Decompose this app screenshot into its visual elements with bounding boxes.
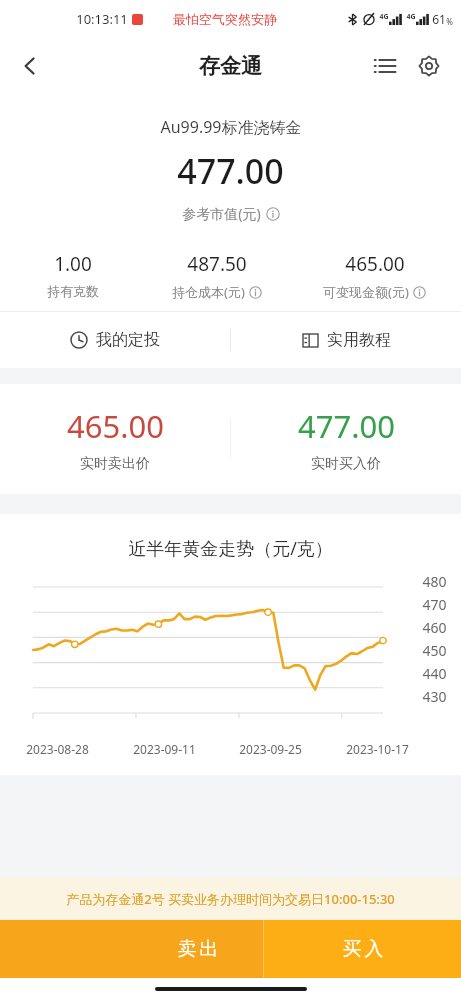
staticText: 参考市值(元) (182, 204, 261, 223)
staticText: 460 (422, 618, 447, 637)
staticText: 477.00 (298, 405, 395, 447)
staticText: Au99.99标准浇铸金 (160, 116, 302, 138)
staticText: 持仓成本(元) (172, 283, 245, 301)
button[interactable]: 465.00 (292, 251, 457, 301)
staticText: 450 (422, 641, 447, 660)
staticText: 存金通 (199, 53, 262, 79)
button[interactable]: 487.50 (141, 251, 292, 301)
button[interactable]: 买入 (264, 920, 461, 978)
button[interactable]: 参考市值(元) (176, 202, 286, 225)
staticText: 卖出 (176, 937, 220, 961)
staticText: 4G (406, 12, 416, 22)
button[interactable]: List (363, 44, 407, 88)
staticText: 480 (422, 572, 447, 591)
staticText: 430 (422, 687, 447, 706)
button[interactable]: 465.00 (0, 384, 230, 494)
staticText: 2023-10-17 (346, 741, 409, 757)
staticText: 4G (379, 12, 389, 22)
button[interactable]: Settings (407, 44, 451, 88)
staticText: % (446, 16, 453, 27)
staticText: 我的定投 (96, 330, 160, 350)
staticText: 477.00 (177, 148, 284, 194)
staticText: 2023-08-28 (26, 741, 89, 757)
button[interactable]: 1.00 (4, 251, 141, 299)
button[interactable]: 卖出 (133, 920, 263, 978)
staticText: 1.00 (54, 251, 92, 277)
staticText: 465.00 (345, 251, 405, 277)
staticText: 持有克数 (47, 283, 99, 299)
staticText: 2023-09-11 (133, 741, 196, 757)
staticText: 实时卖出价 (80, 455, 150, 473)
staticText: 10:13:11 (76, 10, 128, 28)
staticText: 最怕空气突然安静 (173, 11, 277, 27)
button[interactable]: 实用教程 (231, 312, 461, 368)
staticText: 买入 (341, 937, 385, 961)
staticText: 465.00 (67, 405, 164, 447)
staticText: 440 (422, 664, 447, 683)
button[interactable]: 477.00 (231, 384, 461, 494)
staticText: 487.50 (187, 251, 247, 277)
staticText: 可变现金额(元) (323, 283, 409, 301)
button[interactable]: 我的定投 (0, 312, 230, 368)
staticText: 2023-09-25 (239, 741, 302, 757)
button[interactable]: Back (8, 44, 52, 88)
staticText: 产品为存金通2号 买卖业务办理时间为交易日10:00-15:30 (66, 890, 395, 908)
staticText: 实用教程 (327, 330, 391, 350)
staticText: 470 (422, 595, 447, 614)
staticText: 近半年黄金走势（元/克） (0, 536, 461, 561)
staticText: 61 (432, 11, 446, 27)
staticText: 实时买入价 (311, 455, 381, 473)
